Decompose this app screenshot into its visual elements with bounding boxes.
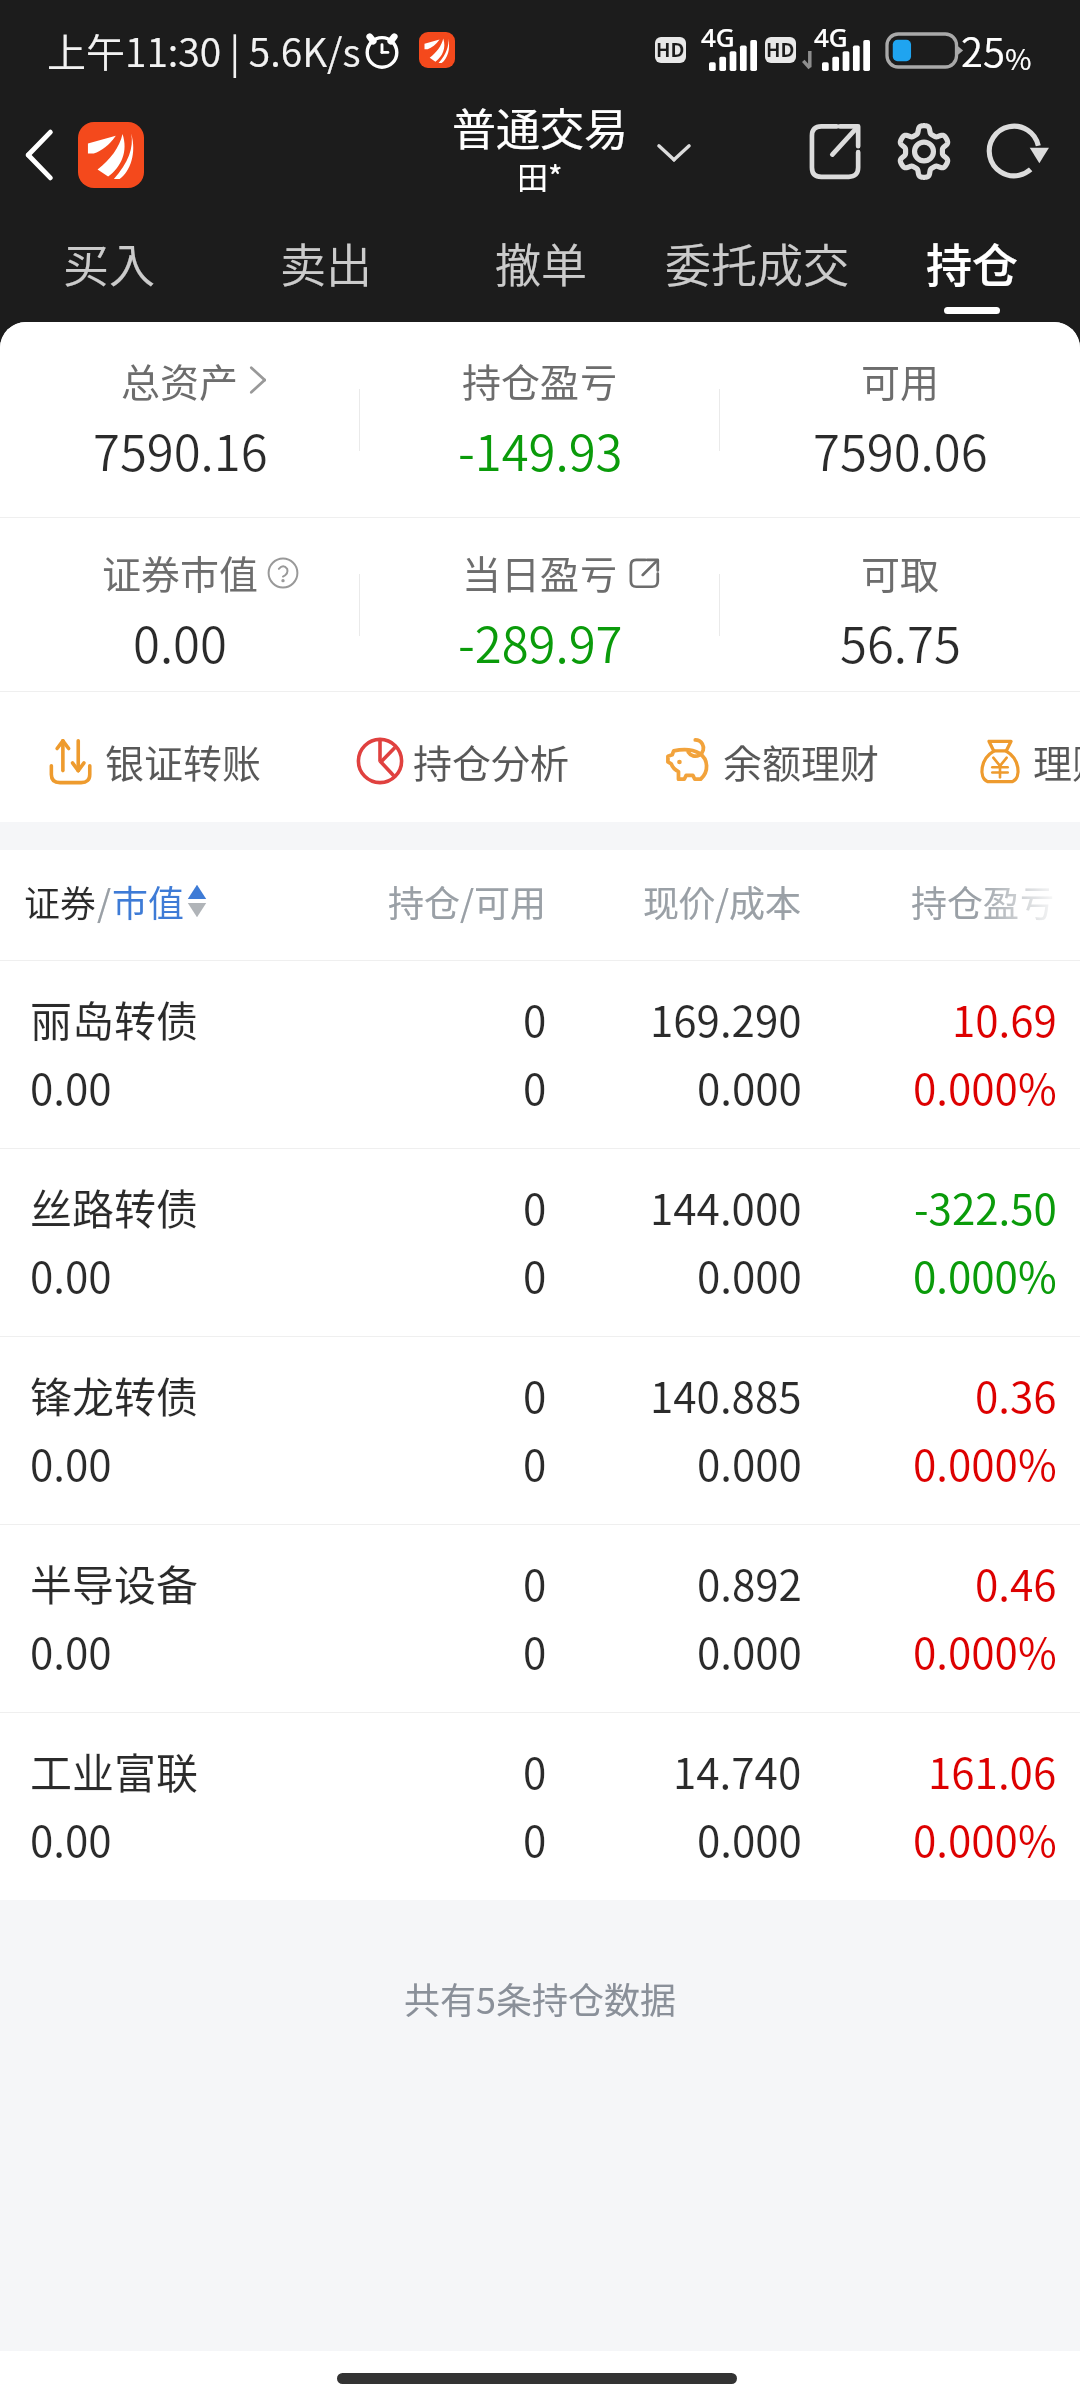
staticText: 0 [523, 1620, 547, 1680]
staticText: 10.69 [952, 988, 1057, 1048]
staticText: 0 [523, 1552, 547, 1612]
staticText: 总资产 [121, 352, 239, 408]
staticText: 140.885 [650, 1364, 802, 1424]
button[interactable]: 余额理财 [666, 699, 880, 822]
button[interactable]: 当日盈亏 [360, 518, 720, 691]
button[interactable]: Settings [880, 100, 968, 222]
staticText: 0.000 [697, 1808, 802, 1868]
button[interactable]: 半导设备 [0, 1525, 1080, 1712]
staticText: 证券市值 [102, 544, 259, 600]
button[interactable]: 证券市值 [0, 518, 360, 691]
button[interactable]: Refresh [974, 100, 1062, 222]
staticText: 持仓盈亏 [911, 875, 1056, 927]
staticText: 161.06 [928, 1740, 1057, 1800]
staticText: 共有5条持仓数据 [404, 1972, 676, 2024]
staticText: 持仓/可用 [388, 875, 547, 927]
button[interactable]: East Money [78, 122, 144, 188]
staticText: 56.75 [840, 606, 961, 677]
staticText: 0 [523, 1176, 547, 1236]
staticText: 4G [701, 19, 735, 54]
staticText: 普通交易 [452, 95, 628, 159]
staticText: 买入 [63, 229, 155, 296]
button[interactable]: 买入 [46, 222, 172, 322]
button[interactable]: 撤单 [478, 222, 604, 322]
staticText: 0.892 [697, 1552, 802, 1612]
button[interactable]: 丝路转债 [0, 1149, 1080, 1336]
button[interactable]: 总资产 [0, 322, 360, 517]
staticText: HD [656, 37, 685, 63]
staticText: 0.00 [30, 1432, 112, 1492]
button[interactable]: 持仓分析 [356, 699, 570, 822]
staticText: 当日盈亏 [462, 544, 619, 600]
staticText: 0.00 [30, 1244, 112, 1304]
staticText: 理财 [1033, 733, 1080, 789]
staticText: 0.36 [975, 1364, 1057, 1424]
button[interactable]: 普通交易 [440, 100, 700, 222]
staticText: 0.000 [697, 1244, 802, 1304]
staticText: 锋龙转债 [30, 1364, 199, 1424]
button[interactable]: 银证转账 [48, 699, 262, 822]
staticText: -149.93 [458, 414, 623, 485]
staticText: 0.00 [30, 1620, 112, 1680]
button[interactable]: 可取 [720, 518, 1080, 691]
staticText: 持仓分析 [413, 733, 570, 789]
staticText: 工业富联 [30, 1740, 199, 1800]
staticText: 0.000 [697, 1056, 802, 1116]
staticText: 0.000 [697, 1620, 802, 1680]
staticText: 银证转账 [105, 733, 262, 789]
staticText: 25 [961, 21, 1005, 79]
staticText: 上午11:30 | 5.6K/s [47, 22, 361, 78]
staticText: 卖出 [280, 229, 372, 296]
button[interactable]: 理财 [976, 699, 1080, 822]
staticText: / [97, 875, 112, 927]
staticText: 撤单 [495, 229, 587, 296]
button[interactable]: 工业富联 [0, 1713, 1080, 1900]
staticText: 0.000% [913, 1808, 1057, 1868]
staticText: 0.000% [913, 1244, 1057, 1304]
staticText: 0.00 [30, 1808, 112, 1868]
staticText: 半导设备 [30, 1552, 199, 1612]
staticText: 现价/成本 [643, 875, 802, 927]
staticText: 可用 [861, 352, 940, 408]
staticText: 0 [523, 988, 547, 1048]
button[interactable]: 持仓 [909, 222, 1035, 322]
staticText: 0 [523, 1432, 547, 1492]
staticText: -289.97 [458, 606, 623, 677]
staticText: 证券 [24, 875, 97, 927]
staticText: 7590.16 [93, 414, 268, 485]
staticText: 0.000% [913, 1056, 1057, 1116]
staticText: 0 [523, 1244, 547, 1304]
staticText: 田* [517, 153, 563, 198]
staticText: 144.000 [650, 1176, 802, 1236]
staticText: 可取 [861, 544, 940, 600]
staticText: 169.290 [650, 988, 802, 1048]
staticText: 0.00 [30, 1056, 112, 1116]
staticText: 0 [523, 1808, 547, 1868]
button[interactable]: 持仓盈亏 [360, 322, 720, 517]
button[interactable]: 卖出 [263, 222, 389, 322]
staticText: 0 [523, 1364, 547, 1424]
button[interactable]: Share [790, 100, 878, 222]
staticText: 持仓 [926, 229, 1018, 296]
staticText: 0 [523, 1056, 547, 1116]
staticText: 0.000 [697, 1432, 802, 1492]
staticText: 4G [814, 19, 848, 54]
staticText: 0.000% [913, 1432, 1057, 1492]
button[interactable]: 丽岛转债 [0, 961, 1080, 1148]
staticText: 市值 [112, 875, 185, 927]
button[interactable]: 锋龙转债 [0, 1337, 1080, 1524]
staticText: 0.00 [133, 606, 227, 677]
staticText: 7590.06 [813, 414, 988, 485]
button[interactable]: Back [0, 100, 78, 222]
button[interactable]: 证券 [0, 850, 1080, 960]
button[interactable]: 委托成交 [651, 222, 863, 322]
staticText: 0.46 [975, 1552, 1057, 1612]
staticText: HD [766, 37, 795, 63]
staticText: 14.740 [673, 1740, 802, 1800]
staticText: -322.50 [914, 1176, 1057, 1236]
staticText: % [1005, 36, 1032, 78]
staticText: 丽岛转债 [30, 988, 199, 1048]
staticText: 委托成交 [665, 229, 849, 296]
button[interactable]: 可用 [720, 322, 1080, 517]
staticText: 持仓盈亏 [462, 352, 619, 408]
